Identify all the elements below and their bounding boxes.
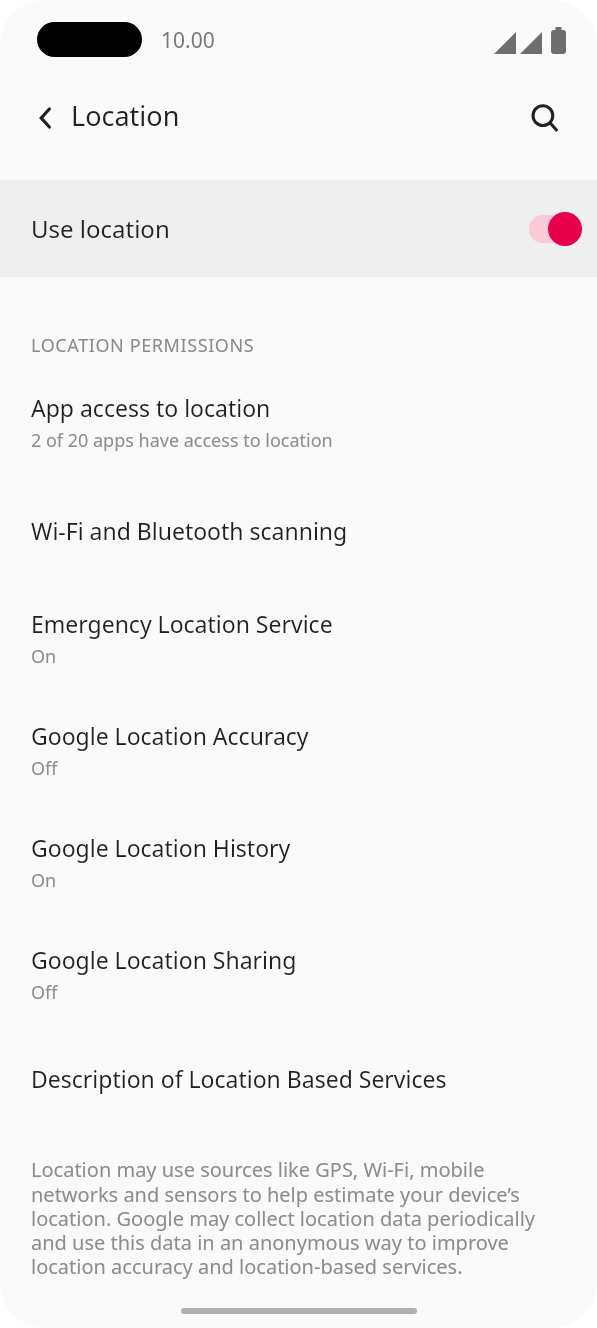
- staticText: On: [31, 644, 57, 669]
- staticText: Google Location Sharing: [31, 944, 297, 975]
- staticText: Location may use sources like GPS, Wi-Fi…: [31, 1156, 575, 1280]
- staticText: Off: [31, 756, 58, 781]
- staticText: On: [31, 868, 57, 893]
- button[interactable]: Wi-Fi and Bluetooth scanning: [0, 515, 597, 546]
- staticText: Emergency Location Service: [31, 608, 333, 639]
- button[interactable]: Emergency Location Service: [0, 608, 597, 669]
- staticText: Wi-Fi and Bluetooth scanning: [31, 515, 348, 546]
- button[interactable]: App access to location: [0, 392, 597, 453]
- staticText: LOCATION PERMISSIONS: [31, 333, 255, 358]
- button[interactable]: Google Location Accuracy: [0, 720, 597, 781]
- staticText: 10.00: [161, 26, 215, 55]
- button[interactable]: Google Location Sharing: [0, 944, 597, 1005]
- staticText: Location: [71, 97, 180, 134]
- staticText: Description of Location Based Services: [31, 1063, 447, 1094]
- button[interactable]: Search: [517, 90, 573, 146]
- button[interactable]: Back: [18, 90, 74, 146]
- staticText: Google Location History: [31, 832, 291, 863]
- button[interactable]: Google Location History: [0, 832, 597, 893]
- button[interactable]: Use location: [0, 180, 597, 277]
- staticText: App access to location: [31, 392, 271, 423]
- button[interactable]: Description of Location Based Services: [0, 1063, 597, 1094]
- staticText: Use location: [31, 212, 170, 245]
- staticText: 2 of 20 apps have access to location: [31, 428, 333, 453]
- staticText: Google Location Accuracy: [31, 720, 309, 751]
- staticText: Off: [31, 980, 58, 1005]
